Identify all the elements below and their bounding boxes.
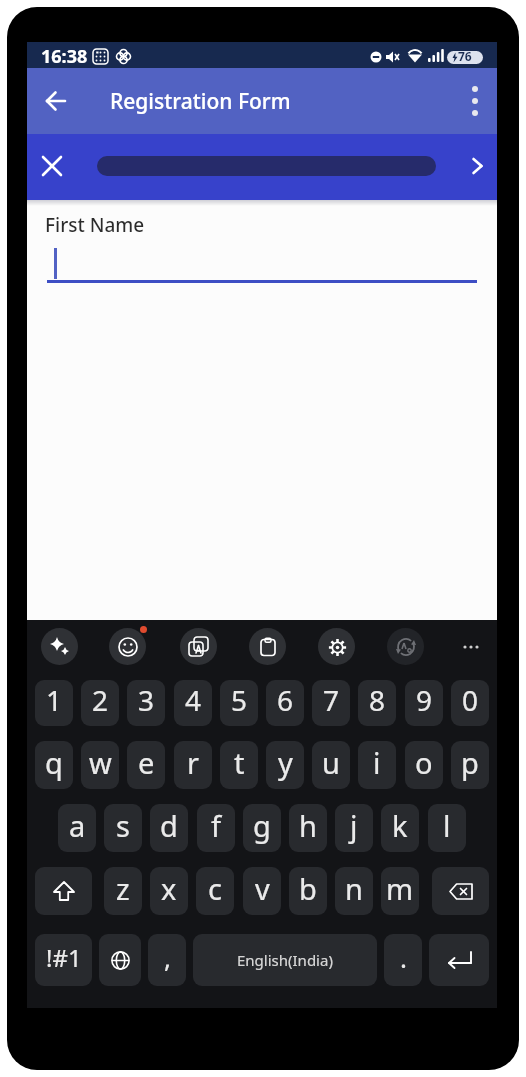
button[interactable]: k	[381, 804, 419, 852]
button[interactable]: v	[243, 867, 281, 915]
button[interactable]: 5	[220, 680, 258, 726]
button[interactable]: w	[81, 741, 119, 789]
button[interactable]	[34, 148, 70, 184]
button[interactable]: n	[335, 867, 373, 915]
staticText: a	[69, 806, 86, 845]
staticText: i	[373, 743, 381, 782]
button[interactable]: u	[312, 741, 350, 789]
button[interactable]: ,	[148, 934, 186, 986]
button[interactable]: j	[335, 804, 373, 852]
staticText: r	[187, 743, 199, 782]
button[interactable]: z	[104, 867, 142, 915]
button[interactable]: h	[289, 804, 327, 852]
button[interactable]: o	[405, 741, 443, 789]
staticText: z	[116, 869, 130, 908]
button[interactable]: English(India)	[193, 934, 377, 986]
button[interactable]: 8	[358, 680, 396, 726]
button[interactable]: !#1	[35, 934, 92, 986]
staticText: y	[278, 743, 293, 782]
staticText: v	[255, 869, 270, 908]
button[interactable]: .	[384, 934, 422, 986]
button[interactable]: d	[150, 804, 188, 852]
button[interactable]: 2	[81, 680, 119, 726]
staticText: First Name	[45, 212, 145, 238]
staticText: t	[234, 743, 245, 782]
staticText: h	[299, 806, 317, 845]
staticText: 76	[458, 48, 472, 64]
button[interactable]: m	[381, 867, 419, 915]
staticText: q	[45, 743, 63, 782]
button[interactable]: i	[358, 741, 396, 789]
staticText: p	[461, 743, 479, 782]
staticText: .	[400, 940, 407, 975]
button[interactable]: e	[127, 741, 165, 789]
staticText: f	[211, 806, 221, 845]
button[interactable]	[41, 628, 78, 665]
staticText: d	[160, 806, 178, 845]
button[interactable]	[459, 148, 495, 184]
button[interactable]: 3	[127, 680, 165, 726]
staticText: 6	[277, 681, 294, 719]
button[interactable]: b	[289, 867, 327, 915]
staticText: m	[386, 869, 414, 908]
button[interactable]	[455, 81, 495, 121]
staticText: 0	[462, 681, 479, 719]
button[interactable]: y	[266, 741, 304, 789]
staticText: 3	[138, 681, 155, 719]
staticText: b	[299, 869, 317, 908]
staticText: x	[161, 869, 177, 908]
button[interactable]	[99, 934, 141, 986]
button[interactable]: l	[428, 804, 466, 852]
staticText: k	[392, 806, 408, 845]
button[interactable]	[35, 867, 92, 915]
staticText: s	[116, 806, 130, 845]
staticText: 4	[185, 681, 202, 719]
button[interactable]: 7	[312, 680, 350, 726]
button[interactable]	[452, 628, 489, 665]
button[interactable]: g	[243, 804, 281, 852]
staticText: 2	[92, 681, 109, 719]
button[interactable]: a	[58, 804, 96, 852]
button[interactable]	[432, 867, 489, 915]
button[interactable]	[36, 81, 76, 121]
staticText: Registration Form	[110, 87, 291, 116]
button[interactable]: 6	[266, 680, 304, 726]
button[interactable]: f	[197, 804, 235, 852]
button[interactable]: s	[104, 804, 142, 852]
staticText: ,	[164, 940, 171, 975]
staticText: c	[208, 869, 222, 908]
button[interactable]: 9	[405, 680, 443, 726]
button[interactable]	[318, 628, 355, 665]
staticText: e	[138, 743, 155, 782]
button[interactable]: 1	[35, 680, 73, 726]
button[interactable]	[180, 628, 217, 665]
staticText: 9	[416, 681, 433, 719]
button[interactable]: r	[174, 741, 212, 789]
staticText: n	[345, 869, 363, 908]
staticText: 16:38	[41, 44, 88, 69]
button[interactable]	[429, 934, 489, 986]
button[interactable]: q	[35, 741, 73, 789]
staticText: 7	[323, 681, 340, 719]
staticText: !#1	[46, 941, 82, 974]
button[interactable]	[109, 628, 146, 665]
staticText: 5	[231, 681, 248, 719]
staticText: j	[350, 806, 358, 845]
button[interactable]	[249, 628, 286, 665]
button[interactable]: p	[451, 741, 489, 789]
button[interactable]: 4	[174, 680, 212, 726]
staticText: o	[415, 743, 433, 782]
staticText: l	[443, 806, 451, 845]
button[interactable]: x	[150, 867, 188, 915]
staticText: 8	[369, 681, 386, 719]
staticText: u	[322, 743, 340, 782]
button[interactable]: t	[220, 741, 258, 789]
button[interactable]: c	[196, 867, 234, 915]
staticText: g	[253, 806, 271, 845]
button[interactable]	[387, 628, 424, 665]
staticText: 1	[46, 681, 63, 719]
staticText: English(India)	[237, 950, 333, 970]
staticText: w	[89, 743, 112, 782]
button[interactable]: 0	[451, 680, 489, 726]
